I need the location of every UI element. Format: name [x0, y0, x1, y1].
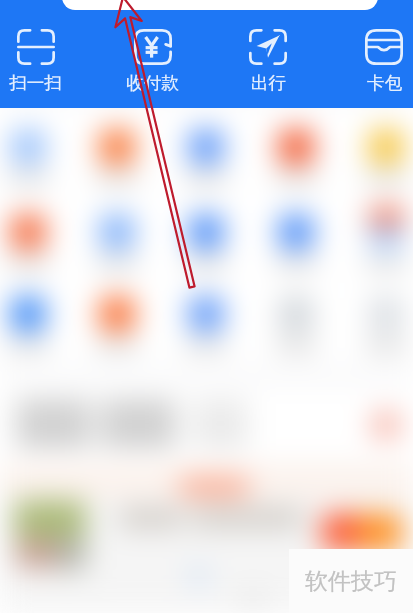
staticText: 软件技巧: [305, 567, 397, 596]
staticText: 扫一扫: [9, 72, 62, 94]
staticText: 收付款: [126, 72, 179, 94]
button[interactable]: 卡包: [342, 24, 413, 96]
button[interactable]: 扫一扫: [0, 24, 77, 96]
staticText: 卡包: [367, 72, 402, 94]
button[interactable]: 收付款: [110, 24, 194, 96]
staticText: 出行: [251, 72, 286, 94]
button[interactable]: 出行: [226, 24, 310, 96]
button[interactable]: Search: [62, 0, 378, 10]
